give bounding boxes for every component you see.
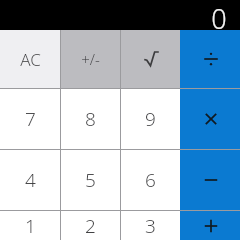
button[interactable]: Subtract <box>181 150 240 210</box>
button[interactable]: +/- <box>61 30 120 88</box>
button[interactable]: 7 <box>0 89 60 149</box>
button[interactable]: 8 <box>61 89 120 149</box>
button[interactable]: 4 <box>0 150 60 210</box>
button[interactable]: Square root <box>121 30 180 88</box>
button[interactable]: 2 <box>61 211 120 240</box>
staticText: 8 <box>85 106 96 132</box>
staticText: 4 <box>25 167 36 193</box>
staticText: 2 <box>85 213 96 239</box>
button[interactable]: 6 <box>121 150 180 210</box>
staticText: 7 <box>25 106 36 132</box>
staticText: 5 <box>85 167 96 193</box>
staticText: 3 <box>145 213 156 239</box>
button[interactable]: 3 <box>121 211 180 240</box>
button[interactable]: 9 <box>121 89 180 149</box>
button[interactable]: AC <box>0 30 60 88</box>
button[interactable]: 5 <box>61 150 120 210</box>
button[interactable]: Divide <box>181 30 240 88</box>
staticText: AC <box>20 48 41 71</box>
button[interactable]: 1 <box>0 211 60 240</box>
staticText: 1 <box>25 213 36 239</box>
staticText: +/- <box>81 49 100 69</box>
staticText: 9 <box>145 106 156 132</box>
button[interactable]: Add <box>181 211 240 240</box>
staticText: 6 <box>145 167 156 193</box>
button[interactable]: Multiply <box>181 89 240 149</box>
staticText: 0 <box>211 0 227 30</box>
